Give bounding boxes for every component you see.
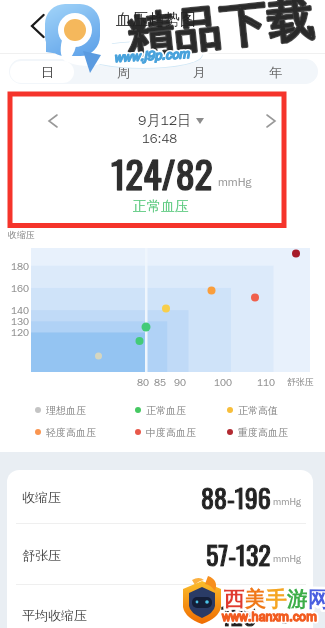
staticText: 正常血压 [146,404,186,417]
staticText: 年 [269,64,282,80]
button[interactable]: 舒张压 [7,524,313,585]
staticText: 手 [266,586,287,612]
staticText: www.j9p.com [114,45,190,65]
staticText: 110 [257,376,275,389]
staticText: mmHg [273,495,301,508]
staticText: 美 [245,586,266,612]
staticText: 收缩压 [22,489,61,505]
staticText: 日 [41,64,54,80]
staticText: 理想血压 [46,404,86,417]
staticText: 舒张压 [22,547,61,563]
staticText: 124/82 [111,145,213,201]
staticText: 平均收缩压 [22,607,87,623]
staticText: mmHg [273,552,301,565]
staticText: 160 [11,282,29,294]
staticText: 中度高血压 [146,426,196,439]
staticText: 130 [11,315,29,327]
staticText: 80 [137,376,149,389]
staticText: 收缩压 [8,229,35,240]
button[interactable] [44,112,62,130]
staticText: 网 [308,586,325,612]
button[interactable]: 平均收缩压 [7,585,313,628]
staticText: mmHg [218,174,252,189]
staticText: 游 [287,586,308,612]
staticText: 手 [266,586,287,612]
button[interactable]: 日 [9,59,85,84]
staticText: 128 [221,595,257,628]
staticText: www.hanxm.com [222,608,317,624]
staticText: www.hanxm.com [222,608,317,624]
staticText: 重度高血压 [238,426,288,439]
staticText: 西 [224,586,245,612]
staticText: 9月12日 [138,112,192,130]
staticText: 周 [117,64,130,80]
staticText: 血压趋势图 [116,10,196,30]
staticText: 124/82 [111,145,213,201]
staticText: 网 [308,586,325,612]
button[interactable]: 年 [237,59,313,84]
staticText: 西 [224,586,245,612]
staticText: 游 [287,586,308,612]
staticText: 140 [11,304,29,316]
button[interactable]: 月 [161,59,237,84]
staticText: 85 [154,376,166,389]
staticText: mmHg [259,612,287,625]
button[interactable]: 周 [85,59,161,84]
staticText: 舒张压 [287,376,314,387]
staticText: 轻度高血压 [46,426,96,439]
staticText: 128 [221,595,257,628]
button[interactable]: 收缩压 [7,470,313,524]
staticText: 精品下载 [124,0,317,67]
staticText: 180 [11,260,29,272]
staticText: 88-196 [201,478,271,517]
staticText: www.hanxm.com [222,608,317,624]
staticText: 精品下载 [124,0,317,67]
button[interactable] [18,8,58,44]
button[interactable] [262,112,280,130]
staticText: 正常高值 [238,404,278,417]
staticText: 90 [174,376,186,389]
staticText: 16:48 [142,130,178,146]
staticText: 120 [11,326,29,338]
staticText: 美 [245,586,266,612]
staticText: www.j9p.com [114,45,190,65]
staticText: 精品下载 [124,0,317,67]
staticText: 100 [214,376,232,389]
staticText: 正常血压 [133,198,189,216]
button[interactable] [120,110,210,132]
staticText: 88-196 [201,478,271,517]
staticText: 月 [193,64,206,80]
staticText: 57-132 [206,535,271,574]
staticText: www.j9p.com [114,45,190,65]
staticText: 57-132 [206,535,271,574]
